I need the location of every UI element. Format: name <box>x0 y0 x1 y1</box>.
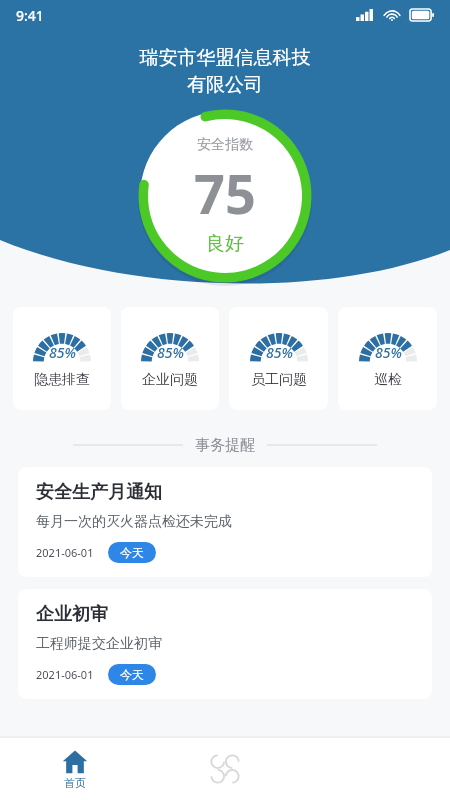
button[interactable]: 安全生产月通知 <box>18 467 432 577</box>
staticText: 员工问题 <box>251 371 307 389</box>
staticText: 每月一次的灭火器点检还未完成 <box>36 513 232 531</box>
staticText: 85% <box>49 343 76 362</box>
button[interactable]: 85% <box>338 307 437 410</box>
button[interactable]: Apps <box>150 738 300 800</box>
staticText: 9:41 <box>16 6 44 25</box>
staticText: 今天 <box>120 545 144 560</box>
staticText: 首页 <box>64 776 86 790</box>
staticText: 良好 <box>206 232 244 256</box>
staticText: 巡检 <box>374 371 402 389</box>
staticText: 事务提醒 <box>195 436 255 455</box>
staticText: 企业初审 <box>36 603 108 626</box>
staticText: 安全生产月通知 <box>36 481 162 504</box>
staticText: 今天 <box>120 667 144 682</box>
button[interactable]: 85% <box>229 307 328 410</box>
button[interactable]: 85% <box>13 307 111 410</box>
staticText: 2021-06-01 <box>36 545 94 560</box>
button[interactable]: 首页 <box>0 738 150 800</box>
staticText: 85% <box>157 343 184 362</box>
staticText: 安全指数 <box>197 136 253 154</box>
staticText: 85% <box>375 343 402 362</box>
staticText: 隐患排查 <box>34 371 90 389</box>
staticText: 企业问题 <box>142 371 198 389</box>
staticText: 85% <box>266 343 293 362</box>
staticText: 2021-06-01 <box>36 667 94 682</box>
button[interactable]: 85% <box>121 307 219 410</box>
staticText: 75 <box>194 156 256 230</box>
staticText: 工程师提交企业初审 <box>36 635 162 653</box>
button[interactable]: 企业初审 <box>18 589 432 699</box>
staticText: 瑞安市华盟信息科技 有限公司 <box>0 46 450 97</box>
